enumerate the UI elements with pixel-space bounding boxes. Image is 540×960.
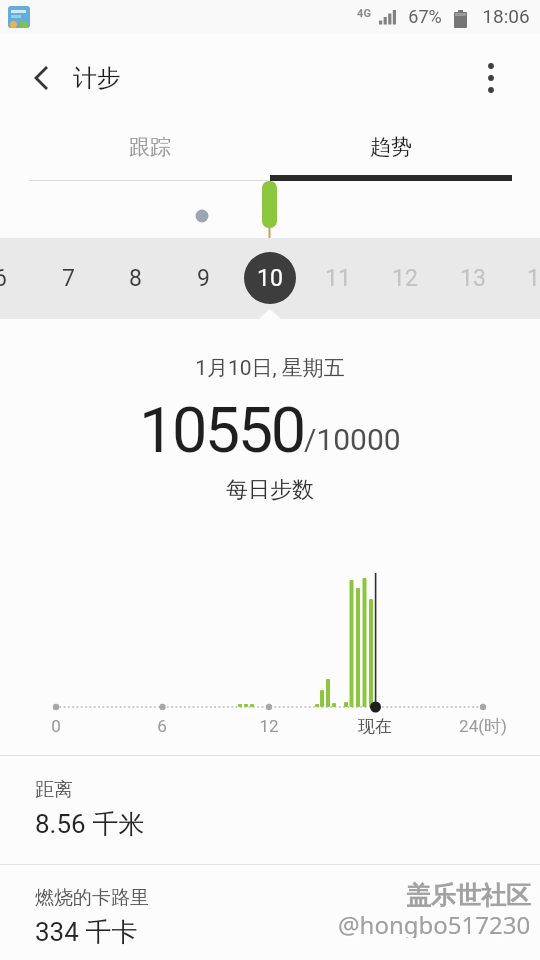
- staticText: 12: [259, 716, 279, 736]
- staticText: 10550: [139, 394, 304, 468]
- staticText: 8: [129, 265, 142, 292]
- staticText: /10000: [304, 422, 401, 457]
- staticText: 6: [0, 265, 7, 292]
- staticText: 24(时): [459, 716, 507, 737]
- staticText: 11: [325, 265, 351, 292]
- staticText: 每日步数: [226, 476, 314, 504]
- button[interactable]: 13: [443, 258, 503, 298]
- staticText: 盖乐世社区: [406, 880, 531, 910]
- button[interactable]: [24, 60, 60, 96]
- staticText: 12: [392, 265, 418, 292]
- staticText: 10: [257, 265, 283, 292]
- staticText: 0: [51, 716, 61, 736]
- staticText: 燃烧的卡路里: [35, 886, 149, 910]
- button[interactable]: 8: [105, 258, 165, 298]
- button[interactable]: 10: [244, 252, 296, 304]
- staticText: 7: [62, 265, 75, 292]
- button[interactable]: 11: [308, 258, 368, 298]
- staticText: 6: [157, 716, 167, 736]
- staticText: 趋势: [370, 134, 412, 160]
- staticText: 334 千卡: [35, 916, 138, 949]
- staticText: 8.56 千米: [35, 808, 145, 841]
- button[interactable]: 趋势: [270, 112, 512, 181]
- button[interactable]: 12: [375, 258, 435, 298]
- button[interactable]: 14: [510, 258, 540, 298]
- button[interactable]: 9: [173, 258, 233, 298]
- staticText: 现在: [358, 716, 392, 737]
- button[interactable]: 跟踪: [29, 112, 270, 181]
- staticText: 13: [460, 265, 486, 292]
- staticText: @hongbo517230: [338, 908, 531, 938]
- staticText: 1月10日, 星期五: [195, 355, 345, 381]
- staticText: 18:06: [482, 5, 530, 27]
- button[interactable]: [473, 60, 509, 96]
- staticText: 14: [527, 265, 540, 292]
- staticText: 9: [197, 265, 210, 292]
- staticText: 跟踪: [129, 134, 171, 160]
- staticText: 4G: [357, 7, 371, 20]
- staticText: 67%: [408, 6, 442, 27]
- staticText: 距离: [35, 778, 73, 802]
- staticText: 计步: [73, 63, 121, 93]
- button[interactable]: 7: [38, 258, 98, 298]
- button[interactable]: 6: [0, 258, 30, 298]
